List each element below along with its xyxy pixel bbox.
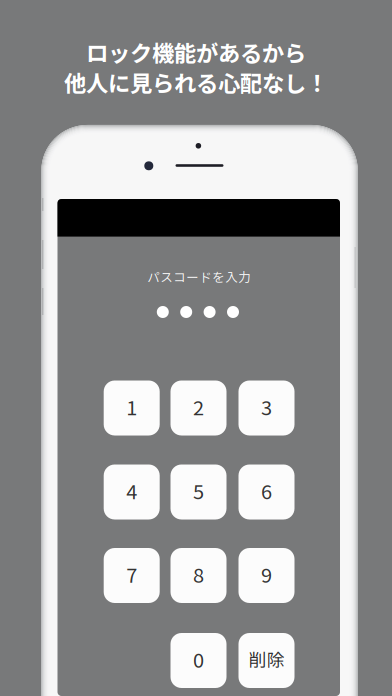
staticText: 5	[193, 476, 204, 505]
staticText: 4	[126, 476, 137, 505]
button[interactable]: 5	[170, 464, 226, 519]
button[interactable]: 削除	[238, 633, 294, 688]
staticText: 8	[193, 559, 204, 588]
staticText: 9	[261, 559, 272, 588]
staticText: 6	[261, 476, 272, 505]
staticText: 1	[126, 392, 137, 421]
staticText: 3	[261, 392, 272, 421]
staticText: 2	[193, 392, 204, 421]
button[interactable]: 2	[170, 380, 226, 435]
button[interactable]: 3	[238, 380, 294, 435]
button[interactable]: 7	[104, 548, 160, 603]
staticText: 他人に見られる心配なし！	[64, 66, 328, 98]
staticText: 0	[193, 644, 204, 673]
staticText: 7	[126, 559, 137, 588]
staticText: ロック機能があるから	[86, 36, 306, 68]
staticText: 削除	[248, 646, 284, 672]
button[interactable]: 1	[104, 380, 160, 435]
button[interactable]: 8	[170, 548, 226, 603]
button[interactable]: 0	[170, 633, 226, 688]
button[interactable]: 6	[238, 464, 294, 519]
button[interactable]: 4	[104, 464, 160, 519]
button[interactable]: 9	[238, 548, 294, 603]
staticText: パスコードを入力	[147, 267, 251, 285]
